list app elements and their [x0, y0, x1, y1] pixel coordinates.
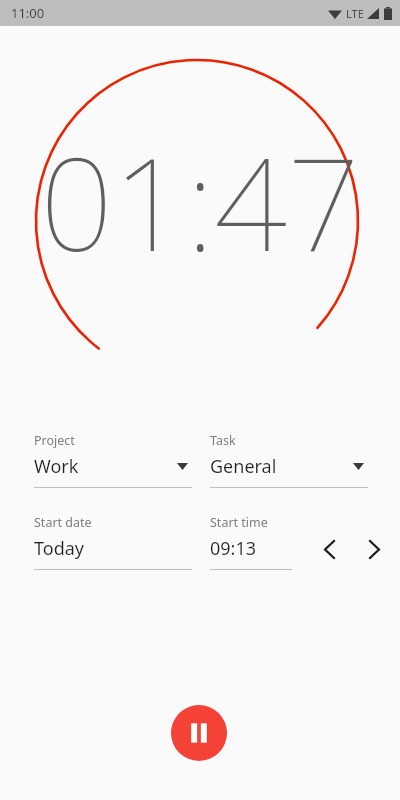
staticText: Start date — [34, 514, 92, 531]
staticText: 11:00 — [11, 4, 45, 22]
button[interactable]: Previous time — [314, 534, 344, 564]
staticText: LTE — [346, 6, 364, 21]
button[interactable]: Next time — [366, 534, 382, 564]
staticText: 01:47 — [0, 114, 400, 288]
staticText: Start time — [210, 514, 268, 531]
staticText: Today — [34, 536, 84, 561]
button[interactable]: Pause timer — [171, 705, 227, 761]
button[interactable]: Start date — [34, 514, 192, 570]
button[interactable]: Start time — [210, 514, 292, 570]
staticText: Task — [210, 432, 236, 449]
staticText: Work — [34, 454, 79, 479]
staticText: 09:13 — [210, 536, 257, 561]
staticText: General — [210, 454, 277, 479]
button[interactable]: Task — [210, 432, 368, 488]
staticText: Project — [34, 432, 75, 449]
button[interactable]: Project — [34, 432, 192, 488]
